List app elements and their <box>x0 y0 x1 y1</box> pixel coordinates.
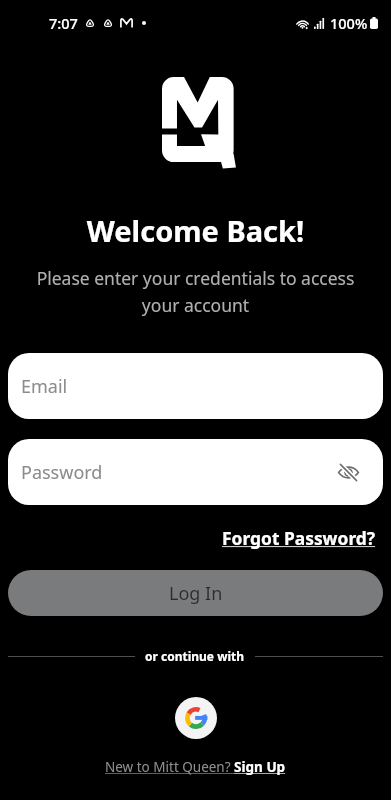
staticText: Email <box>21 374 68 399</box>
staticText: Welcome Back! <box>0 211 391 250</box>
staticText: Log In <box>169 581 223 606</box>
button[interactable]: Log In <box>8 570 383 616</box>
staticText: 7:07 <box>49 13 78 33</box>
staticText: 100% <box>330 13 368 33</box>
button[interactable]: New to Mitt Queen? Sign Up <box>105 758 286 776</box>
button[interactable]: Sign in with Google <box>175 697 217 739</box>
button[interactable]: Password <box>8 439 383 505</box>
button[interactable]: Toggle password visibility <box>332 456 364 488</box>
staticText: Please enter your credentials to access … <box>18 266 373 317</box>
button[interactable]: Email <box>8 353 383 419</box>
staticText: Password <box>21 460 103 485</box>
staticText: or continue with <box>145 648 245 664</box>
button[interactable]: Forgot Password? <box>222 526 376 550</box>
